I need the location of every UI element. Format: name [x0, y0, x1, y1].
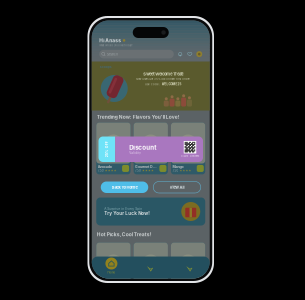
- staticText: 7.50: [172, 169, 178, 172]
- staticText: scoops: [100, 65, 112, 69]
- staticText: View All: [169, 185, 184, 190]
- staticText: 7.50: [98, 169, 104, 172]
- staticText: Claim: [181, 154, 188, 158]
- staticText: Try Your Luck Now!: [104, 211, 150, 216]
- button[interactable]: Profile: [196, 51, 202, 57]
- staticText: 25% OFF: [99, 147, 115, 151]
- button[interactable]: Notifications: [177, 51, 183, 57]
- button[interactable]: Stores: [131, 256, 170, 278]
- staticText: Validity: [129, 151, 141, 155]
- staticText: ★★★★: [105, 169, 117, 172]
- staticText: Hot Picks, Cool Treats!: [97, 231, 152, 237]
- staticText: Use code:: [145, 83, 160, 86]
- staticText: Avocado: [98, 164, 112, 169]
- button[interactable]: A Surprise in Every Spin: [96, 197, 205, 225]
- button[interactable]: Mango: [171, 122, 205, 174]
- button[interactable]: Gourmet Delight: [134, 122, 168, 174]
- button[interactable]: Gourmet Delight: [134, 242, 168, 294]
- button[interactable]: Back To Home: [101, 181, 148, 193]
- button[interactable]: Search: [99, 50, 174, 58]
- button[interactable]: Mango: [171, 242, 205, 294]
- staticText: A Surprise in Every Spin: [104, 207, 142, 211]
- staticText: Sweet Welcome Treat!: [143, 71, 183, 76]
- staticText: Mango: [172, 164, 183, 169]
- staticText: Gourmet Delight: [135, 164, 157, 169]
- staticText: ★★★★: [142, 169, 154, 172]
- staticText: Hi Anass: [99, 37, 121, 43]
- staticText: Redeem: [190, 154, 199, 158]
- staticText: Home: [107, 271, 115, 274]
- staticText: Discount: [129, 144, 156, 151]
- staticText: What would you like today?: [99, 44, 132, 47]
- button[interactable]: Avocado: [96, 122, 130, 174]
- staticText: Back To Home: [111, 185, 137, 190]
- button[interactable]: Home: [92, 256, 131, 278]
- staticText: 7.50: [135, 169, 141, 172]
- staticText: Search: [107, 52, 118, 56]
- staticText: WELCOME25: [161, 82, 181, 86]
- button[interactable]: Profile: [170, 256, 210, 278]
- button[interactable]: View All: [153, 181, 201, 193]
- staticText: Trending Now: Flavors You'll Love!: [97, 114, 180, 120]
- staticText: New Users Get 25% OFF on their first ord…: [136, 77, 190, 81]
- staticText: ★★★★: [179, 169, 191, 172]
- button[interactable]: Favorites: [187, 51, 193, 57]
- button[interactable]: Avocado: [96, 242, 130, 294]
